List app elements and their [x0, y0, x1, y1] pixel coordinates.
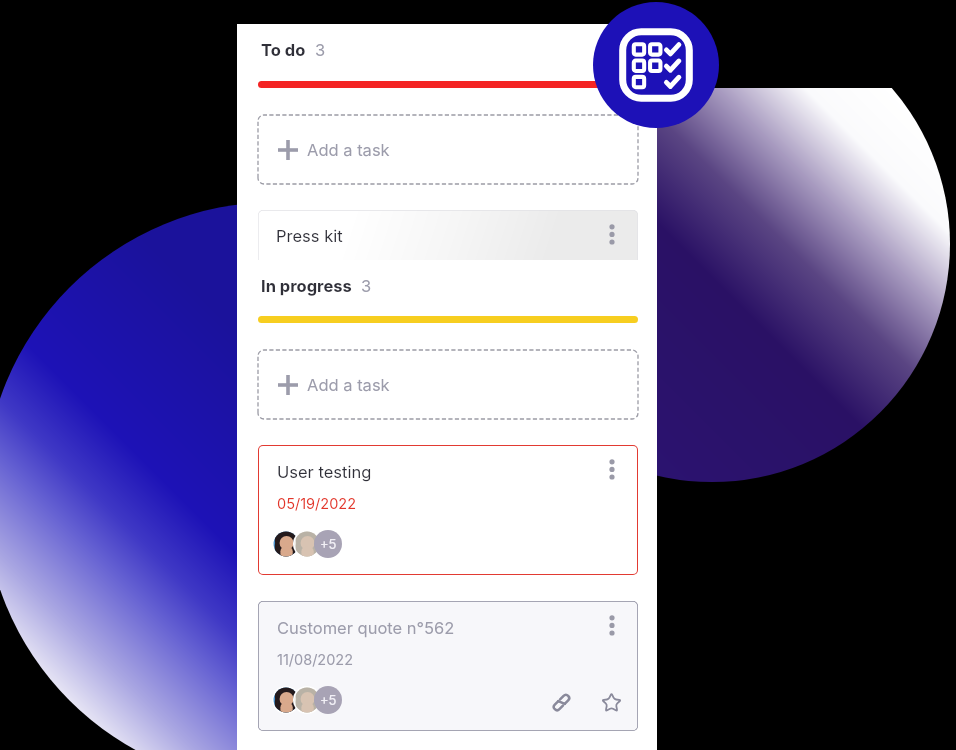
staticText: Customer quote n°562 — [277, 618, 455, 638]
button[interactable]: Favourite — [596, 687, 626, 717]
staticText: User testing — [277, 462, 372, 482]
staticText: +5 — [320, 692, 337, 708]
staticText: 3 — [361, 276, 372, 296]
staticText: In progress — [261, 276, 352, 296]
button[interactable]: Add a task — [258, 115, 638, 184]
staticText: 3 — [315, 40, 326, 60]
button[interactable]: Add a task — [258, 350, 638, 419]
button[interactable]: Copy link — [546, 687, 576, 717]
staticText: 05/19/2022 — [277, 495, 356, 513]
staticText: 11/08/2022 — [277, 651, 354, 669]
button[interactable]: Tasks — [593, 2, 719, 128]
button[interactable]: User testing — [258, 445, 638, 575]
staticText: Press kit — [276, 226, 343, 246]
button[interactable]: More options — [602, 459, 622, 479]
button[interactable]: More options — [602, 615, 622, 635]
staticText: +5 — [320, 536, 337, 552]
button[interactable]: More options — [602, 224, 622, 244]
staticText: To do — [261, 40, 306, 60]
staticText: Add a task — [307, 140, 390, 160]
button[interactable]: Press kit — [258, 210, 638, 340]
staticText: Add a task — [307, 375, 390, 395]
button[interactable]: Customer quote n°562 — [258, 601, 638, 731]
